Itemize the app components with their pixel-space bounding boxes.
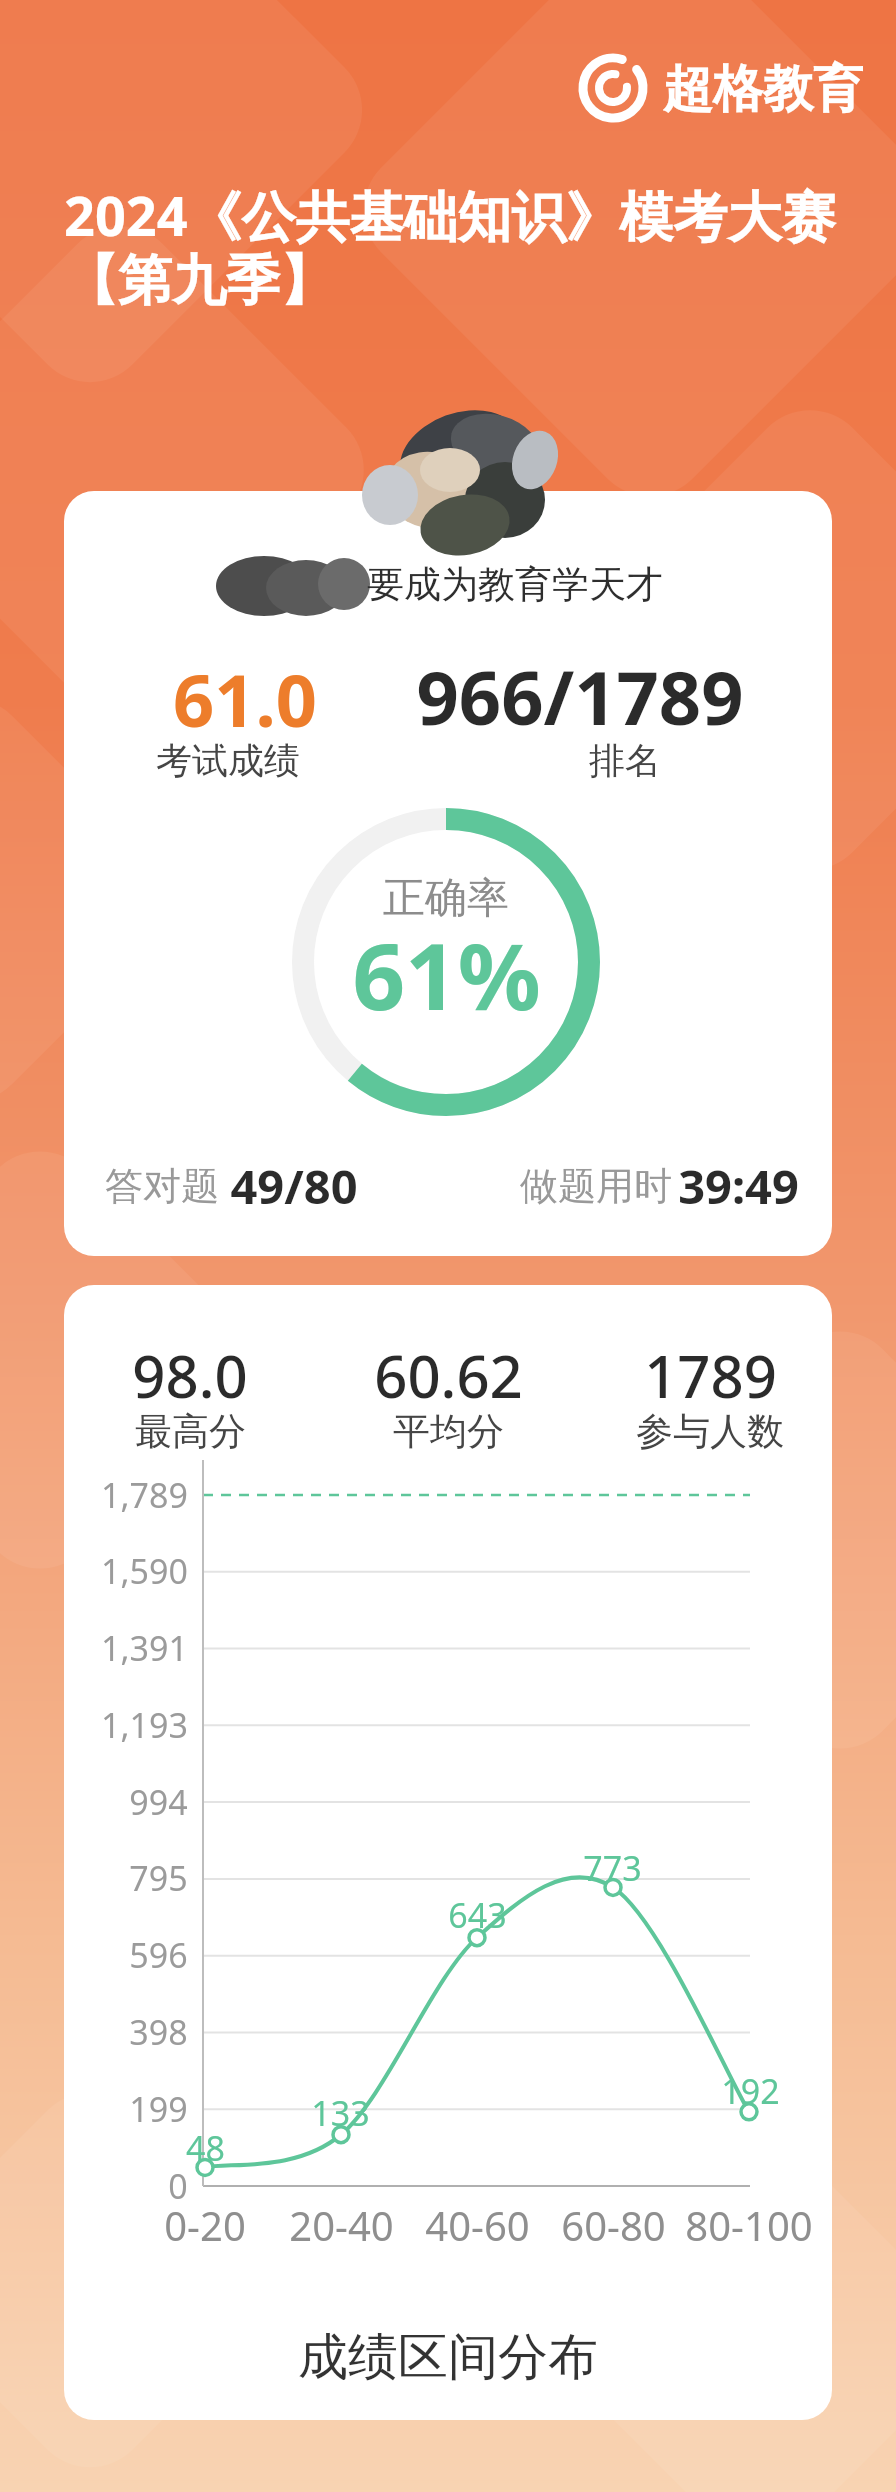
staticText: 1,193 bbox=[101, 1702, 188, 1748]
staticText: 199 bbox=[129, 2086, 188, 2132]
staticText: 643 bbox=[448, 1892, 507, 1932]
staticText: 98.0 bbox=[132, 1336, 248, 1406]
staticText: 192 bbox=[721, 2068, 780, 2108]
staticText: 最高分 bbox=[135, 1408, 246, 1454]
staticText: 60-80 bbox=[561, 2198, 666, 2248]
staticText: 39:49 bbox=[678, 1154, 799, 1216]
staticText: 49/80 bbox=[230, 1154, 358, 1216]
staticText: 994 bbox=[129, 1779, 188, 1825]
button[interactable] bbox=[64, 1285, 832, 2420]
staticText: 773 bbox=[583, 1845, 642, 1885]
staticText: 参与人数 bbox=[636, 1408, 784, 1454]
staticText: 0 bbox=[168, 2163, 188, 2209]
staticText: 做题用时 bbox=[520, 1162, 672, 1210]
staticText: 60.62 bbox=[374, 1336, 523, 1406]
staticText: 80-100 bbox=[685, 2198, 813, 2248]
staticText: 20-40 bbox=[289, 2198, 394, 2248]
staticText: 61.0 bbox=[173, 650, 317, 734]
staticText: 596 bbox=[129, 1932, 188, 1978]
staticText: 48 bbox=[186, 2125, 225, 2165]
staticText: 要成为教育学天才 bbox=[367, 561, 663, 608]
staticText: 40-60 bbox=[425, 2198, 530, 2248]
staticText: 0-20 bbox=[164, 2198, 246, 2248]
staticText: 1789 bbox=[644, 1336, 777, 1406]
staticText: 1,590 bbox=[101, 1548, 188, 1594]
button[interactable] bbox=[64, 491, 832, 1256]
staticText: 答对题 bbox=[105, 1162, 219, 1210]
staticText: 成绩区间分布 bbox=[298, 2326, 598, 2389]
staticText: 考试成绩 bbox=[156, 738, 300, 782]
staticText: 1,391 bbox=[101, 1625, 188, 1671]
staticText: 排名 bbox=[589, 738, 661, 782]
staticText: 61% bbox=[352, 912, 541, 1022]
staticText: 966/1789 bbox=[416, 646, 744, 736]
staticText: 133 bbox=[311, 2090, 370, 2130]
staticText: 2024《公共基础知识》模考大赛 【第九季】 bbox=[64, 178, 836, 315]
staticText: 超格教育 bbox=[663, 58, 863, 120]
staticText: 平均分 bbox=[393, 1408, 504, 1454]
staticText: 正确率 bbox=[383, 872, 509, 924]
staticText: 398 bbox=[129, 2009, 188, 2055]
staticText: 795 bbox=[129, 1855, 188, 1901]
staticText: 1,789 bbox=[101, 1472, 188, 1518]
